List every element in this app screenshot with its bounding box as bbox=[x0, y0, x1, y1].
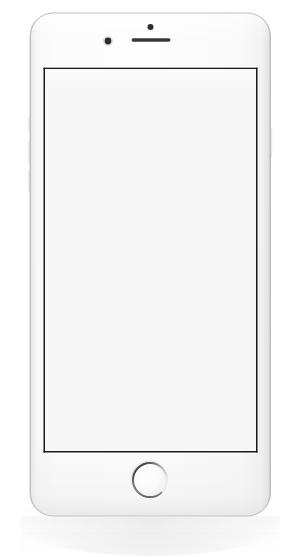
button[interactable]: Home button bbox=[0, 0, 300, 557]
